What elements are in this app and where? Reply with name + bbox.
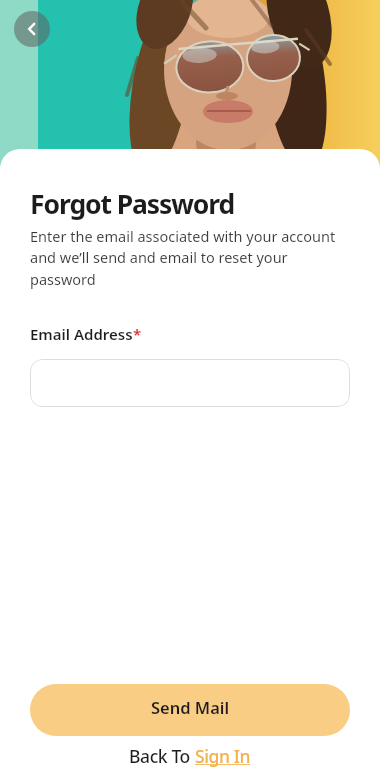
button[interactable]: Send Mail: [30, 684, 350, 736]
staticText: Sign In: [195, 744, 251, 768]
staticText: Back To: [129, 744, 195, 768]
button[interactable]: [14, 11, 50, 47]
staticText: Send Mail: [151, 696, 230, 718]
staticText: Enter the email associated with your acc…: [30, 226, 336, 290]
button[interactable]: Back To: [129, 744, 251, 768]
button[interactable]: [30, 359, 350, 407]
staticText: Forgot Password: [30, 186, 235, 222]
staticText: *: [133, 324, 142, 344]
staticText: Email Address: [30, 324, 133, 344]
